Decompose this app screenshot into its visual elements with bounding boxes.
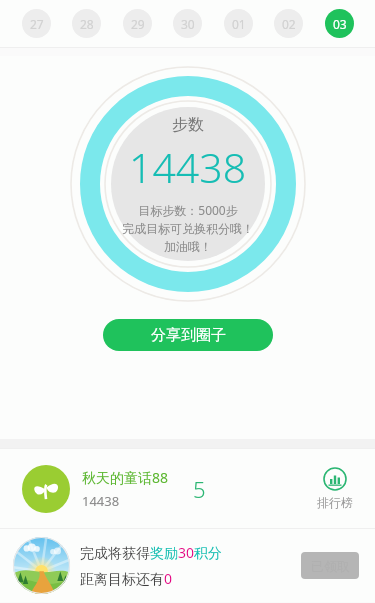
staticText: 02 (282, 16, 296, 32)
staticText: 排行榜 (317, 495, 353, 510)
button[interactable]: 28 (72, 9, 101, 38)
button[interactable]: 秋天的童话88 (0, 449, 375, 528)
button[interactable]: 02 (274, 9, 303, 38)
staticText: 30 (181, 16, 195, 32)
staticText: 01 (232, 16, 246, 32)
staticText: 完成将获得奖励30积分 (80, 543, 223, 562)
staticText: 03 (333, 16, 347, 32)
button[interactable]: 29 (123, 9, 152, 38)
button[interactable]: 分享到圈子 (103, 319, 273, 351)
staticText: 步数 (172, 115, 204, 135)
staticText: 29 (131, 16, 145, 32)
staticText: 距离目标还有0 (80, 569, 173, 588)
button[interactable]: 27 (22, 9, 51, 38)
button[interactable]: 已领取 (301, 552, 359, 579)
staticText: 分享到圈子 (151, 326, 226, 345)
staticText: 加油哦！ (164, 239, 212, 254)
staticText: 28 (80, 16, 94, 32)
staticText: 27 (30, 16, 44, 32)
staticText: 目标步数：5000步 (138, 202, 238, 218)
button[interactable]: 01 (224, 9, 253, 38)
staticText: 秋天的童话88 (82, 468, 169, 487)
staticText: 14438 (129, 139, 247, 195)
button[interactable]: 排行榜 (313, 465, 357, 512)
button[interactable]: 03 (325, 9, 354, 38)
button[interactable]: 30 (173, 9, 202, 38)
staticText: 完成目标可兑换积分哦！ (122, 221, 254, 236)
staticText: 5 (193, 474, 206, 504)
staticText: 14438 (82, 492, 120, 510)
